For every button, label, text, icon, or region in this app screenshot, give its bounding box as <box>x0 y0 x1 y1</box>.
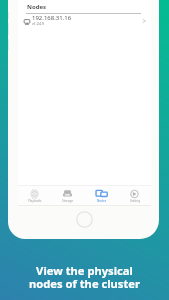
staticText: Playloads <box>28 199 42 203</box>
button[interactable]: Playloads <box>18 186 51 205</box>
button[interactable]: Nodes <box>85 186 118 205</box>
other: Open node details <box>141 18 147 24</box>
staticText: Storage <box>62 199 73 203</box>
staticText: 192.168.31.16 <box>32 14 72 22</box>
staticText: Nodes <box>97 199 107 203</box>
staticText: Nodes <box>27 3 47 11</box>
button[interactable]: Setting <box>118 186 151 205</box>
staticText: v1.24.9 <box>32 21 44 26</box>
button[interactable]: 192.168.31.16 <box>18 13 151 28</box>
staticText: View the physical nodes of the cluster <box>0 263 169 291</box>
other: Home <box>76 211 93 228</box>
staticText: Setting <box>130 199 140 203</box>
button[interactable]: Storage <box>51 186 84 205</box>
